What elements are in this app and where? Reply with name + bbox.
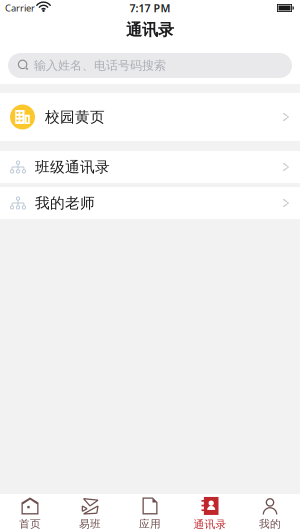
button[interactable]: 通讯录 [180,491,240,530]
staticText: 易班 [79,517,101,530]
staticText: Carrier [5,2,35,14]
button[interactable]: 首页 [0,491,60,530]
staticText: 我的老师 [35,194,95,212]
staticText: 7:17 PM [129,1,170,15]
staticText: 通讯录 [126,20,174,40]
staticText: 应用 [139,517,161,530]
staticText: 输入姓名、电话号码搜索 [34,58,166,73]
staticText: 校园黄页 [45,108,105,126]
staticText: 通讯录 [193,518,226,530]
button[interactable]: 我的 [240,491,300,530]
button[interactable]: 我的老师 [0,187,300,219]
button[interactable]: 应用 [120,491,180,530]
button[interactable]: 输入姓名、电话号码搜索 [8,53,292,78]
staticText: 首页 [19,517,41,530]
button[interactable]: 班级通讯录 [0,151,300,183]
button[interactable]: 校园黄页 [0,93,300,141]
staticText: 我的 [259,517,281,530]
staticText: 班级通讯录 [35,158,110,176]
button[interactable]: 易班 [60,491,120,530]
